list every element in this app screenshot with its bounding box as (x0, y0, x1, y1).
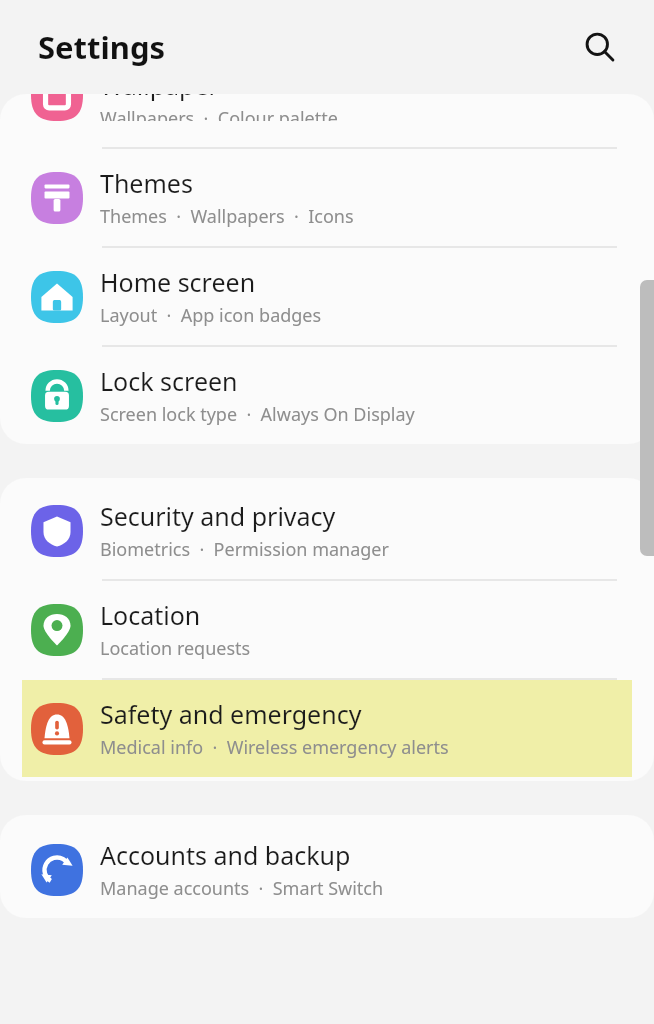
staticText: Themes (100, 166, 193, 200)
staticText: Wallpaper (100, 94, 219, 102)
staticText: Settings (38, 26, 166, 68)
button[interactable]: Location (0, 581, 654, 678)
button[interactable]: Wallpaper (0, 94, 654, 147)
staticText: Screen lock type · Always On Display (100, 402, 415, 427)
staticText: Location requests (100, 636, 251, 661)
staticText: Lock screen (100, 364, 238, 398)
staticText: Wallpapers · Colour palette (100, 106, 338, 121)
staticText: Themes · Wallpapers · Icons (100, 204, 354, 229)
button[interactable]: Search (574, 21, 626, 73)
button[interactable]: Accounts and backup (0, 821, 654, 918)
staticText: Manage accounts · Smart Switch (100, 876, 384, 901)
staticText: Home screen (100, 265, 256, 299)
button[interactable]: Home screen (0, 248, 654, 345)
button[interactable]: Security and privacy (0, 482, 654, 579)
button[interactable]: Lock screen (0, 347, 654, 444)
staticText: Security and privacy (100, 499, 336, 533)
button[interactable]: Safety and emergency (22, 680, 632, 777)
staticText: Layout · App icon badges (100, 303, 322, 328)
staticText: Biometrics · Permission manager (100, 537, 389, 562)
button[interactable]: Themes (0, 149, 654, 246)
staticText: Medical info · Wireless emergency alerts (100, 735, 449, 760)
staticText: Safety and emergency (100, 697, 362, 731)
staticText: Location (100, 598, 201, 632)
staticText: Accounts and backup (100, 838, 351, 872)
